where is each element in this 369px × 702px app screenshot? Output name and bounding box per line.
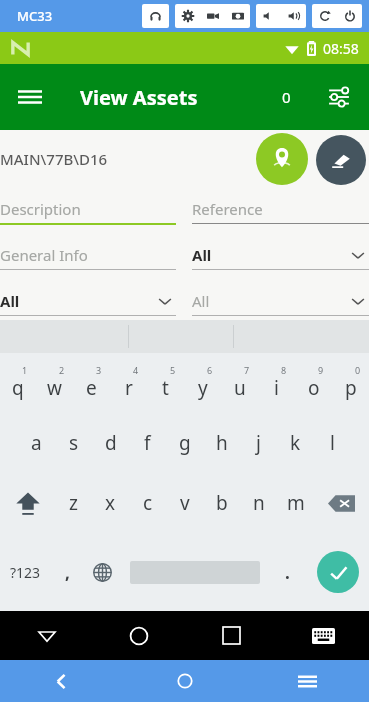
- button[interactable]: .: [269, 533, 306, 611]
- staticText: u: [234, 375, 246, 401]
- staticText: 4: [133, 364, 139, 376]
- staticText: .: [285, 561, 290, 584]
- staticText: 1: [22, 364, 28, 376]
- button[interactable]: h: [203, 413, 240, 473]
- button[interactable]: Shift: [0, 473, 55, 533]
- staticText: 6: [207, 364, 213, 376]
- staticText: 0: [282, 87, 291, 107]
- staticText: All: [0, 291, 20, 311]
- staticText: w: [47, 375, 62, 401]
- button[interactable]: All: [192, 244, 369, 270]
- button[interactable]: m: [277, 473, 314, 533]
- button[interactable]: l: [314, 413, 351, 473]
- button[interactable]: Menu: [8, 75, 52, 119]
- button[interactable]: 9: [295, 353, 332, 413]
- button[interactable]: 3: [73, 353, 110, 413]
- staticText: z: [69, 490, 78, 516]
- button[interactable]: Clear: [316, 135, 366, 185]
- button[interactable]: Screenshot: [225, 4, 250, 28]
- button[interactable]: Switch keyboard: [277, 611, 369, 660]
- button[interactable]: Record: [200, 4, 225, 28]
- button[interactable]: c: [129, 473, 166, 533]
- button[interactable]: Enter: [306, 533, 369, 611]
- staticText: ,: [65, 561, 70, 584]
- staticText: g: [179, 430, 191, 456]
- staticText: f: [144, 430, 151, 456]
- button[interactable]: Power: [337, 4, 362, 28]
- staticText: k: [290, 430, 301, 456]
- staticText: s: [69, 430, 79, 456]
- staticText: m: [287, 490, 305, 516]
- button[interactable]: 5: [147, 353, 184, 413]
- button[interactable]: 4: [110, 353, 147, 413]
- button[interactable]: 2: [36, 353, 73, 413]
- button[interactable]: All: [0, 290, 176, 316]
- button[interactable]: 6: [184, 353, 221, 413]
- button[interactable]: d: [92, 413, 129, 473]
- button[interactable]: Space: [121, 533, 269, 611]
- staticText: 0: [355, 364, 361, 376]
- button[interactable]: Back: [0, 611, 93, 660]
- staticText: Description: [0, 199, 81, 219]
- button[interactable]: Menu: [246, 660, 369, 702]
- button[interactable]: 7: [221, 353, 258, 413]
- button[interactable]: f: [129, 413, 166, 473]
- button[interactable]: a: [18, 413, 55, 473]
- staticText: 8: [281, 364, 287, 376]
- button[interactable]: Filter settings: [317, 75, 361, 119]
- button[interactable]: ?123: [0, 533, 51, 611]
- button[interactable]: Description: [0, 198, 176, 225]
- staticText: ?123: [10, 563, 41, 582]
- staticText: 08:58: [323, 39, 359, 58]
- button[interactable]: Locate: [256, 133, 308, 185]
- staticText: c: [143, 490, 153, 516]
- button[interactable]: Change language: [84, 533, 121, 611]
- button[interactable]: k: [277, 413, 314, 473]
- button[interactable]: ,: [51, 533, 84, 611]
- staticText: a: [31, 430, 42, 456]
- button[interactable]: v: [166, 473, 203, 533]
- staticText: l: [330, 430, 335, 456]
- button[interactable]: All: [192, 290, 369, 316]
- button[interactable]: Back: [0, 660, 123, 702]
- button[interactable]: x: [92, 473, 129, 533]
- button[interactable]: General Info: [0, 244, 176, 270]
- staticText: o: [308, 375, 320, 401]
- staticText: t: [162, 375, 169, 401]
- button[interactable]: s: [55, 413, 92, 473]
- button[interactable]: 8: [258, 353, 295, 413]
- button[interactable]: z: [55, 473, 92, 533]
- staticText: General Info: [0, 245, 88, 265]
- staticText: p: [345, 375, 357, 401]
- button[interactable]: Settings: [175, 4, 200, 28]
- staticText: d: [105, 430, 117, 456]
- button[interactable]: Reference: [192, 198, 369, 224]
- staticText: j: [256, 430, 261, 456]
- button[interactable]: j: [240, 413, 277, 473]
- staticText: b: [216, 490, 228, 516]
- staticText: MAIN\77B\D16: [0, 149, 108, 169]
- button[interactable]: n: [240, 473, 277, 533]
- button[interactable]: Recents: [185, 611, 277, 660]
- button[interactable]: b: [203, 473, 240, 533]
- button[interactable]: Headset: [142, 4, 169, 28]
- button[interactable]: Home: [93, 611, 185, 660]
- staticText: x: [105, 490, 116, 516]
- button[interactable]: g: [166, 413, 203, 473]
- staticText: View Assets: [80, 84, 198, 111]
- staticText: 2: [59, 364, 65, 376]
- button[interactable]: 0: [332, 353, 369, 413]
- button[interactable]: Volume up: [281, 4, 306, 28]
- button[interactable]: Home: [123, 660, 246, 702]
- staticText: h: [216, 430, 228, 456]
- staticText: 3: [96, 364, 102, 376]
- button[interactable]: Rotate: [312, 4, 337, 28]
- button[interactable]: 1: [0, 353, 36, 413]
- staticText: 7: [244, 364, 250, 376]
- button[interactable]: Backspace: [314, 473, 369, 533]
- staticText: r: [125, 375, 133, 401]
- staticText: i: [274, 375, 279, 401]
- staticText: y: [198, 375, 208, 401]
- button[interactable]: Volume down: [256, 4, 281, 28]
- staticText: 5: [170, 364, 176, 376]
